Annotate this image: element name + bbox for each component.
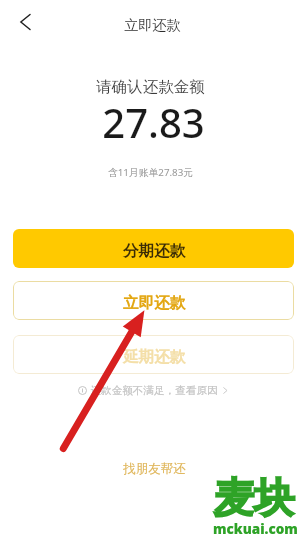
staticText: 还款金额不满足，查看原因 <box>90 384 218 397</box>
staticText: 立即还款 <box>123 293 185 313</box>
staticText: 27.83 <box>3 95 301 149</box>
staticText: 麦块 <box>213 473 295 525</box>
staticText: 分期还款 <box>123 241 185 261</box>
button[interactable]: 找朋友帮还 <box>116 455 192 481</box>
staticText: 含11月账单27.83元 <box>0 166 301 179</box>
button[interactable]: 立即还款 <box>13 281 294 320</box>
staticText: 请确认还款金额 <box>0 77 301 97</box>
staticText: 立即还款 <box>2 16 301 34</box>
staticText: 延期还款 <box>123 347 185 367</box>
staticText: 找朋友帮还 <box>123 461 186 477</box>
button[interactable]: Back <box>9 6 41 38</box>
button[interactable]: 还款金额不满足，查看原因 <box>3 384 301 397</box>
button[interactable]: 延期还款 <box>13 335 294 374</box>
staticText: mckuai.com <box>213 520 298 536</box>
button[interactable]: 分期还款 <box>13 229 294 268</box>
